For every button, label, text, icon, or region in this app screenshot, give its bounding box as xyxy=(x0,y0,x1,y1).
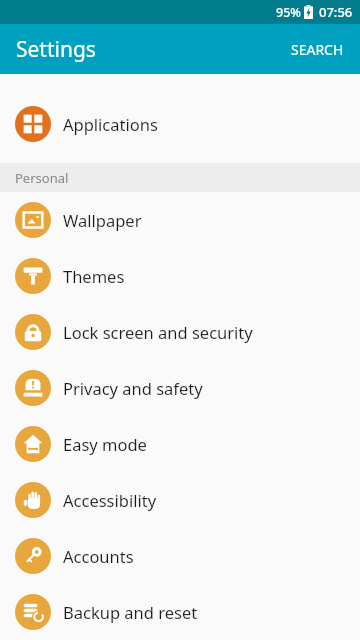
button[interactable]: Backup and reset xyxy=(0,584,360,640)
staticText: Wallpaper xyxy=(63,209,142,231)
button[interactable]: Wallpaper xyxy=(0,192,360,248)
staticText: SEARCH xyxy=(291,40,344,59)
staticText: Lock screen and security xyxy=(63,321,253,343)
button[interactable]: Privacy and safety xyxy=(0,360,360,416)
staticText: Applications xyxy=(63,113,158,135)
button[interactable]: Themes xyxy=(0,248,360,304)
staticText: Personal xyxy=(15,169,69,187)
button[interactable]: Applications xyxy=(0,96,360,152)
staticText: Privacy and safety xyxy=(63,377,203,399)
staticText: 95% xyxy=(276,4,301,21)
button[interactable]: SEARCH xyxy=(275,24,360,74)
button[interactable]: Accessibility xyxy=(0,472,360,528)
staticText: Backup and reset xyxy=(63,601,198,623)
staticText: Easy mode xyxy=(63,433,147,455)
staticText: Settings xyxy=(16,35,96,64)
staticText: Accessibility xyxy=(63,489,157,511)
button[interactable]: Lock screen and security xyxy=(0,304,360,360)
staticText: 07:56 xyxy=(319,3,353,21)
staticText: Accounts xyxy=(63,545,134,567)
button[interactable]: Accounts xyxy=(0,528,360,584)
button[interactable]: Easy mode xyxy=(0,416,360,472)
staticText: Themes xyxy=(63,265,125,287)
